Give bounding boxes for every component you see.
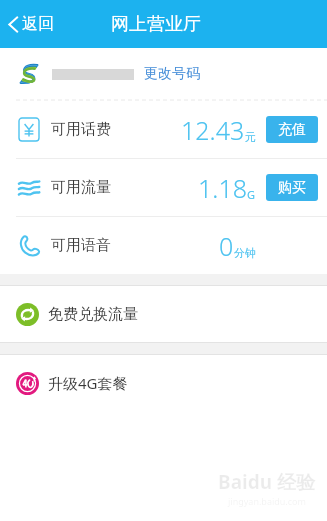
- staticText: Baidu 经验: [218, 469, 315, 495]
- staticText: 0: [219, 229, 234, 263]
- button[interactable]: 返回: [0, 8, 64, 40]
- staticText: 可用语音: [51, 236, 111, 255]
- staticText: 返回: [22, 14, 54, 34]
- button[interactable]: 购买: [266, 174, 318, 201]
- button[interactable]: 升级4G套餐: [0, 355, 327, 411]
- staticText: 元: [245, 130, 256, 144]
- button[interactable]: 免费兑换流量: [0, 286, 327, 342]
- staticText: 升级4G套餐: [48, 373, 128, 393]
- staticText: 12.43: [181, 113, 245, 147]
- staticText: 购买: [278, 179, 306, 197]
- button[interactable]: 可用语音: [0, 217, 327, 274]
- staticText: G: [247, 187, 256, 202]
- button[interactable]: 可用流量: [0, 159, 327, 216]
- staticText: 分钟: [234, 246, 256, 260]
- staticText: 1.18: [198, 171, 247, 205]
- staticText: 充值: [278, 121, 306, 139]
- button[interactable]: 可用话费: [0, 101, 327, 158]
- staticText: 可用话费: [51, 120, 111, 139]
- button[interactable]: 更改号码: [144, 65, 200, 83]
- staticText: 网上营业厅: [111, 13, 201, 36]
- button[interactable]: 充值: [266, 116, 318, 143]
- button[interactable]: 更改号码: [0, 48, 327, 100]
- staticText: 可用流量: [51, 178, 111, 197]
- staticText: 免费兑换流量: [48, 305, 138, 324]
